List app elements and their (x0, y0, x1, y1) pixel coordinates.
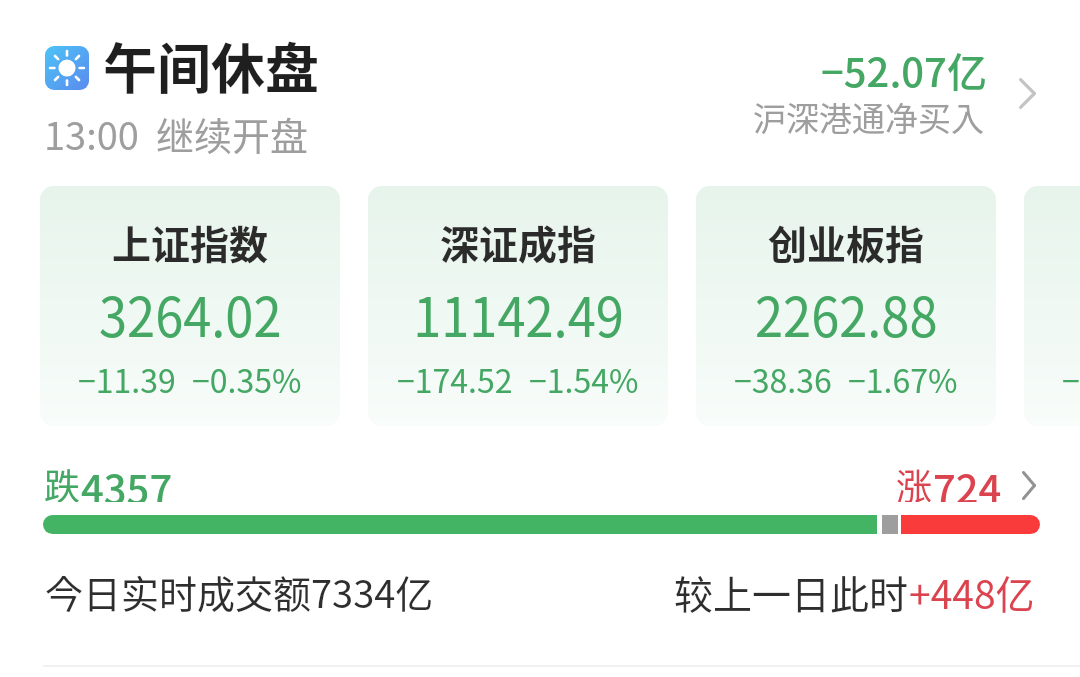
button[interactable]: 涨跌家数详情 (1012, 463, 1046, 507)
staticText: −174.52 (397, 356, 513, 402)
button[interactable]: 沪深港通净买入详情 (1007, 58, 1047, 128)
staticText: +448亿 (909, 564, 1035, 620)
staticText: 今日实时成交额7334亿 (45, 564, 434, 619)
staticText: −11.39 (78, 356, 176, 402)
staticText: −52.07亿 (821, 41, 987, 99)
staticText: 13:00 继续开盘 (44, 106, 308, 161)
staticText: 深证成指 (440, 214, 597, 270)
staticText: 4357 (81, 458, 173, 502)
button[interactable]: 深证成指 (368, 186, 668, 426)
staticText: −0.35% (192, 356, 302, 402)
button[interactable]: 上证指数 (40, 186, 340, 426)
button[interactable]: 午间休盘 (45, 29, 319, 107)
staticText: 较上一日此时 (674, 564, 909, 620)
staticText: −1.54% (529, 356, 639, 402)
staticText: 11142.49 (413, 273, 624, 353)
staticText: −38.36 (734, 356, 832, 402)
staticText: −1.67% (848, 356, 958, 402)
staticText: 3264.02 (99, 273, 282, 353)
staticText: 724 (933, 458, 1002, 502)
button[interactable]: 创业板指 (696, 186, 996, 426)
staticText: 沪深港通净买入 (753, 93, 984, 141)
staticText: 跌 (44, 458, 81, 502)
staticText: 上证指数 (112, 214, 269, 270)
staticText: −12.80 (1062, 356, 1080, 402)
staticText: 创业板指 (768, 214, 925, 270)
staticText: 2262.88 (755, 273, 938, 353)
button[interactable]: 科创50 (1024, 186, 1080, 426)
staticText: 涨 (896, 458, 933, 502)
button[interactable]: 涨 (896, 458, 1002, 502)
button[interactable]: 跌 (44, 458, 173, 502)
staticText: 午间休盘 (103, 26, 319, 104)
